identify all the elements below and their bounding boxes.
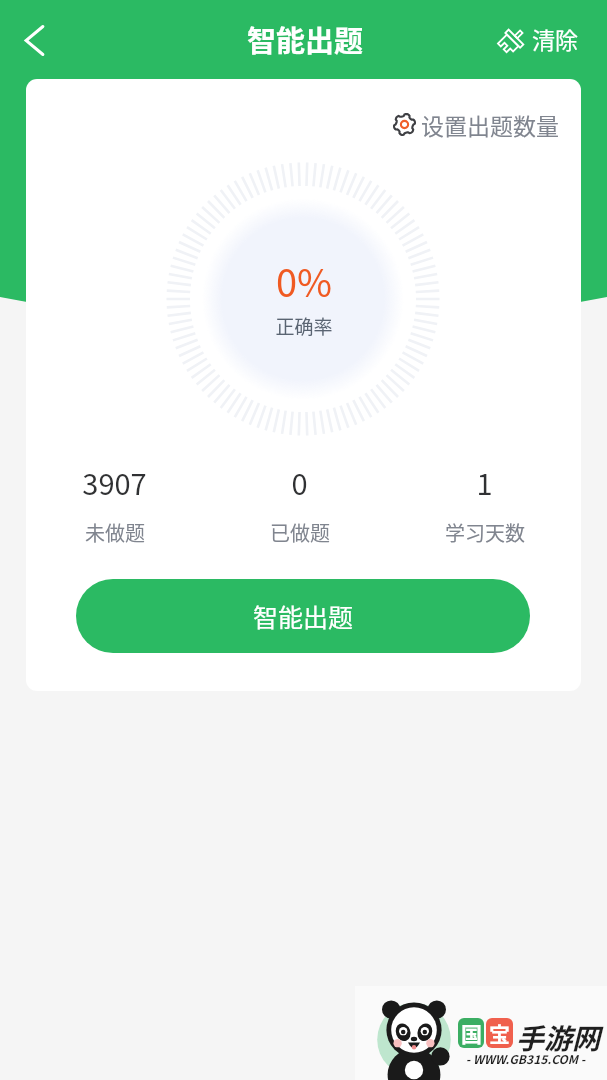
staticText: 设置出题数量: [421, 108, 559, 141]
button[interactable]: 设置出题数量: [392, 108, 559, 141]
staticText: 手游网: [516, 1017, 601, 1058]
staticText: 已做题: [270, 518, 330, 547]
staticText: - WWW.GB315.COM -: [460, 1050, 591, 1067]
staticText: 0: [291, 461, 308, 503]
staticText: 宝: [489, 1018, 510, 1048]
button[interactable]: Back: [10, 16, 58, 64]
staticText: 正确率: [204, 312, 404, 340]
staticText: 国: [461, 1018, 482, 1048]
staticText: 智能出题: [247, 18, 364, 60]
button[interactable]: 清除: [498, 22, 578, 55]
button[interactable]: 3907: [26, 461, 207, 547]
button[interactable]: 0: [207, 461, 392, 547]
button[interactable]: 1: [392, 461, 577, 547]
staticText: 3907: [82, 461, 147, 503]
staticText: 未做题: [85, 518, 145, 547]
staticText: 智能出题: [253, 598, 354, 634]
staticText: 1: [476, 461, 493, 503]
staticText: 清除: [532, 22, 578, 55]
button[interactable]: 智能出题: [76, 579, 530, 653]
staticText: 学习天数: [445, 518, 525, 547]
staticText: 0%: [204, 253, 404, 308]
